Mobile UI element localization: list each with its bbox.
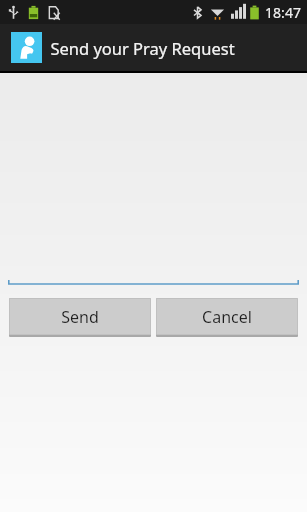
- button[interactable]: Send: [9, 298, 151, 335]
- staticText: Cancel: [202, 306, 252, 328]
- staticText: Send: [61, 306, 99, 328]
- other: App icon: [11, 32, 42, 63]
- button[interactable]: [0, 279, 307, 287]
- button[interactable]: Cancel: [156, 298, 298, 335]
- staticText: Send your Pray Request: [50, 37, 235, 59]
- button[interactable]: App icon: [11, 32, 235, 63]
- staticText: 18:47: [265, 3, 301, 22]
